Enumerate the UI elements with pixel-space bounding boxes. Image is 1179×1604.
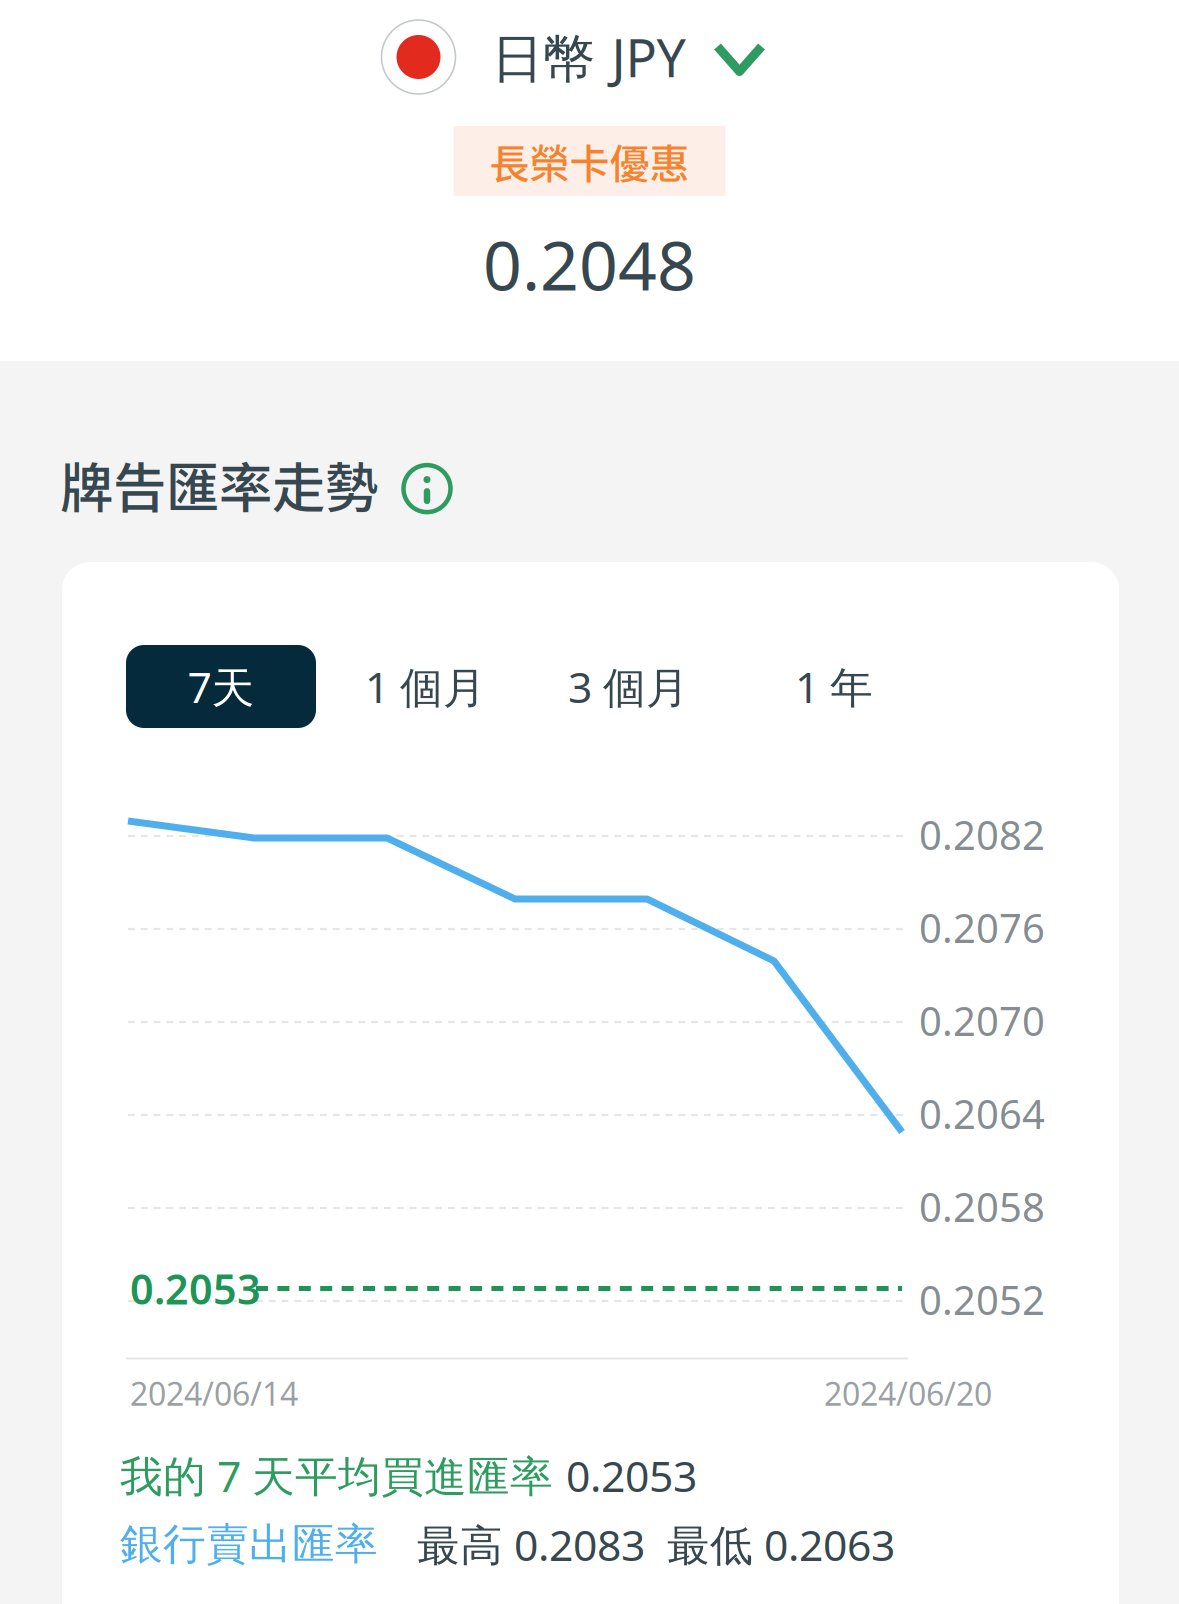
staticText: 0.2064: [919, 1087, 1045, 1140]
staticText: 0.2082: [919, 808, 1045, 861]
staticText: 1 年: [795, 658, 873, 715]
button[interactable]: 3 個月: [535, 645, 722, 728]
staticText: 1 個月: [365, 658, 486, 715]
staticText: 銀行賣出匯率: [120, 1518, 417, 1570]
staticText: 長榮卡優惠: [489, 132, 689, 190]
button[interactable]: 長榮卡優惠: [453, 126, 725, 196]
staticText: 最高 0.2083 最低 0.2063: [417, 1516, 895, 1573]
button[interactable]: 1 個月: [316, 645, 535, 728]
staticText: 7天: [187, 658, 254, 715]
staticText: 2024/06/20: [824, 1372, 992, 1414]
button[interactable]: 日幣 JPY: [381, 20, 761, 94]
staticText: 0.2058: [919, 1180, 1045, 1233]
button[interactable]: 7天: [126, 645, 316, 728]
staticText: 日幣 JPY: [491, 22, 685, 92]
button[interactable]: 1 年: [722, 645, 946, 728]
button[interactable]: About exchange rate trend: [402, 464, 452, 514]
staticText: 0.2053: [566, 1447, 697, 1504]
staticText: 0.2048: [483, 219, 696, 309]
staticText: 牌告匯率走勢: [60, 446, 378, 523]
staticText: 0.2070: [919, 994, 1045, 1047]
staticText: 0.2076: [919, 901, 1045, 954]
staticText: 0.2052: [919, 1273, 1045, 1326]
staticText: 我的 7 天平均買進匯率: [120, 1447, 566, 1504]
staticText: 2024/06/14: [130, 1372, 298, 1414]
staticText: 0.2053: [130, 1261, 261, 1316]
staticText: 3 個月: [568, 658, 689, 715]
